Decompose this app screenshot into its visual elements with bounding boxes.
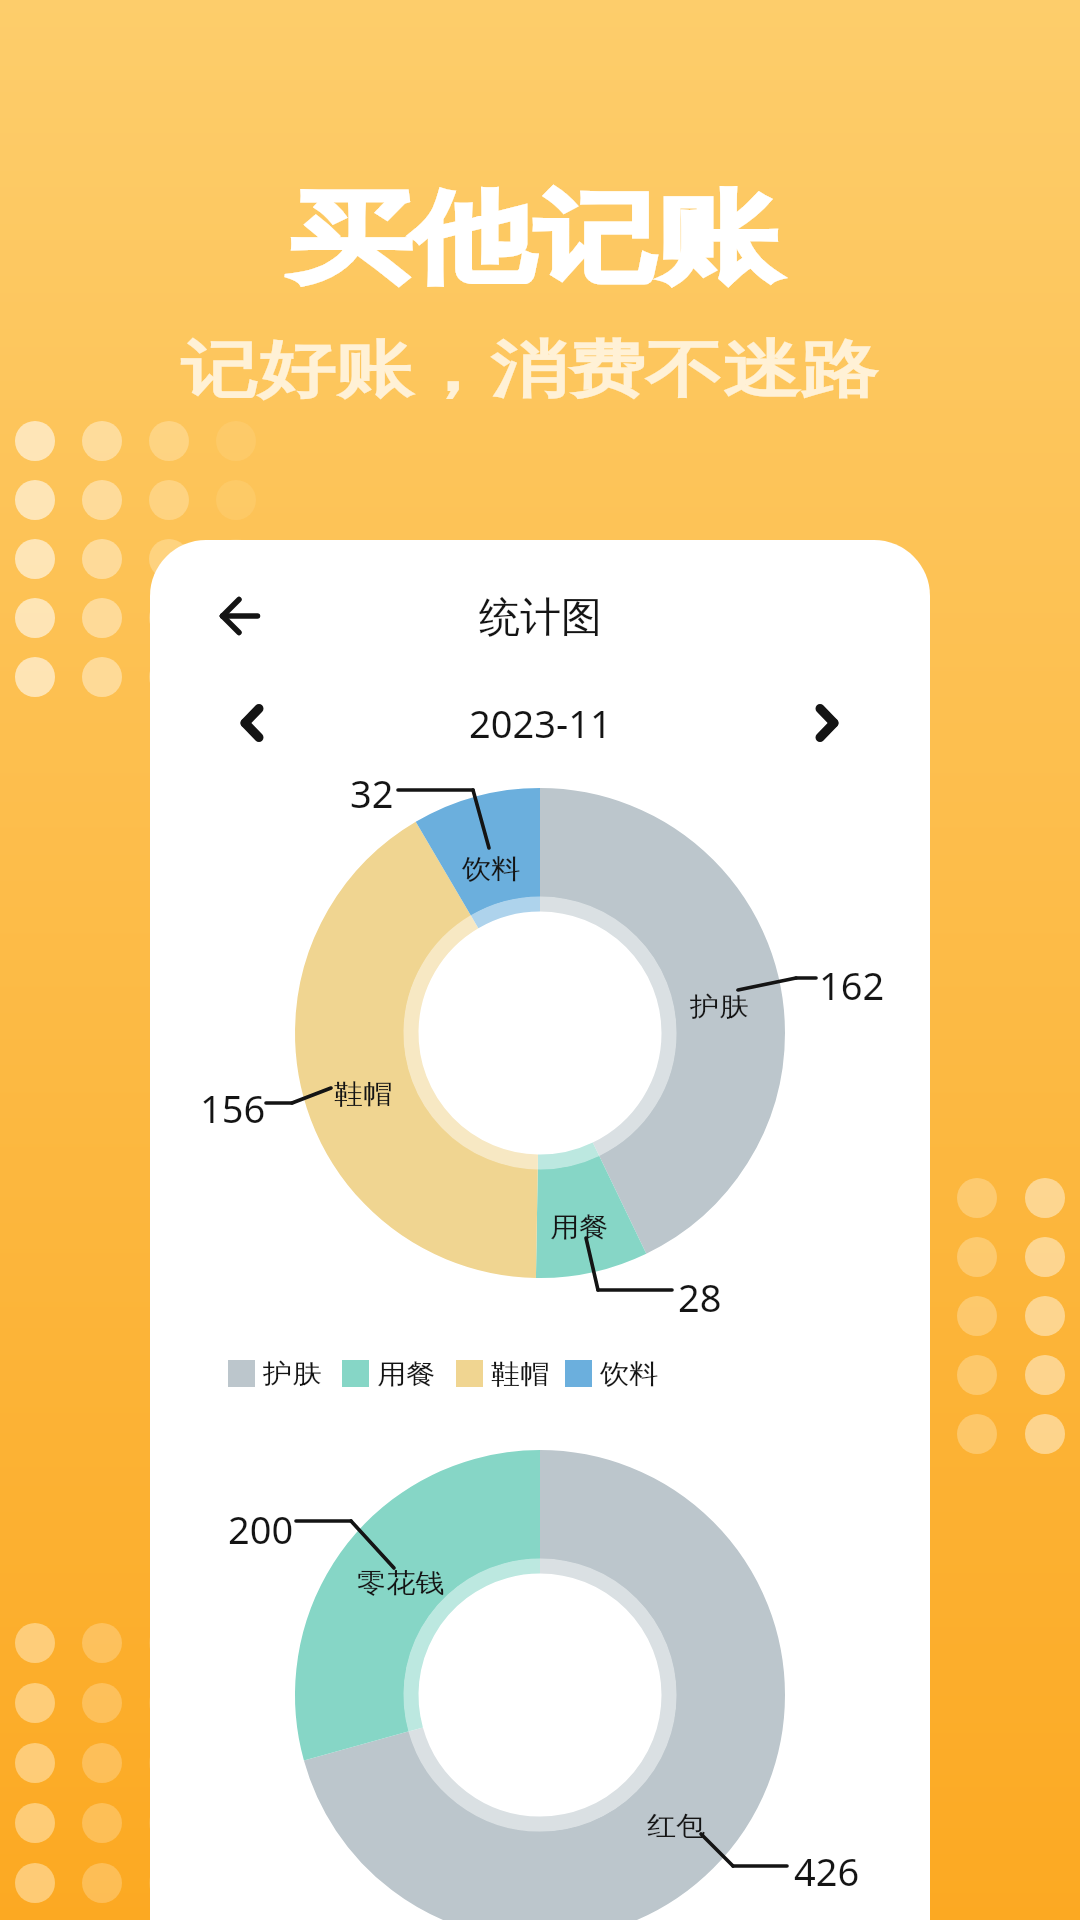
staticText: 鞋帽 — [334, 1077, 392, 1110]
staticText: 32 — [350, 767, 394, 819]
staticText: 记好账，消费不迷路 — [180, 331, 878, 409]
staticText: 用餐 — [377, 1357, 435, 1390]
button[interactable]: Next month — [791, 687, 863, 759]
staticText: 162 — [819, 959, 885, 1011]
staticText: 饮料 — [600, 1357, 658, 1390]
button[interactable]: 鞋帽 — [456, 1357, 544, 1390]
staticText: 156 — [200, 1082, 266, 1134]
staticText: 统计图 — [479, 592, 602, 644]
button[interactable]: 用餐 — [342, 1357, 430, 1390]
button[interactable]: Back — [192, 568, 288, 664]
staticText: 红包 — [647, 1809, 705, 1842]
staticText: 426 — [794, 1845, 860, 1897]
button[interactable]: 饮料 — [565, 1357, 653, 1390]
staticText: 饮料 — [462, 852, 520, 885]
staticText: 鞋帽 — [491, 1357, 549, 1390]
staticText: 用餐 — [550, 1210, 608, 1243]
staticText: 零花钱 — [357, 1566, 445, 1599]
staticText: 200 — [228, 1503, 294, 1555]
staticText: 护肤 — [263, 1357, 321, 1390]
staticText: 护肤 — [690, 990, 748, 1023]
staticText: 买他记账 — [288, 177, 779, 302]
staticText: 28 — [678, 1271, 722, 1323]
button[interactable]: Previous month — [216, 687, 288, 759]
button[interactable]: 护肤 — [228, 1357, 316, 1390]
staticText: 2023-11 — [469, 697, 612, 749]
